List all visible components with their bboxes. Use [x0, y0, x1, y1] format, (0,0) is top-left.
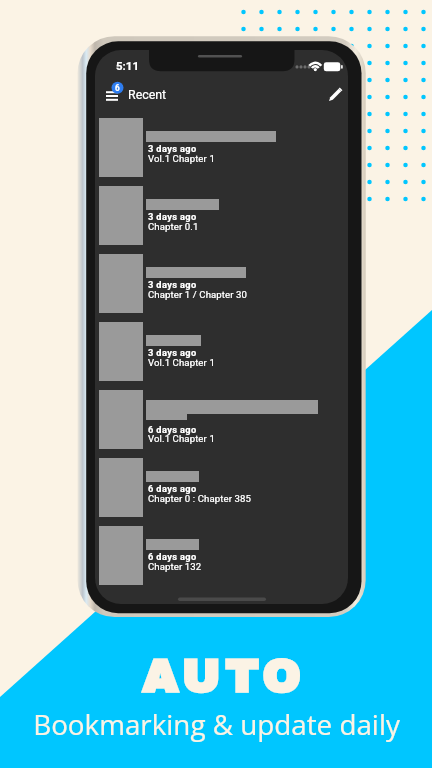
staticText: Vol.1 Chapter 1 — [148, 357, 215, 368]
button[interactable]: Menu — [103, 80, 129, 106]
button[interactable]: 6 days ago — [95, 390, 348, 453]
staticText: 5:11 — [116, 59, 140, 72]
staticText: Vol.1 Chapter 1 — [148, 433, 215, 444]
staticText: Vol.1 Chapter 1 — [148, 153, 215, 164]
staticText: 6 days ago — [148, 483, 197, 494]
staticText: Chapter 0.1 — [148, 221, 199, 232]
staticText: AUTO — [142, 652, 306, 701]
button[interactable]: 6 days ago — [95, 526, 348, 589]
button[interactable]: 6 days ago — [95, 458, 348, 521]
staticText: Bookmarking & update daily — [33, 705, 400, 743]
staticText: 3 days ago — [148, 279, 197, 290]
staticText: Chapter 1 / Chapter 30 — [148, 289, 248, 300]
staticText: 6 days ago — [148, 551, 197, 562]
staticText: Chapter 132 — [148, 561, 202, 572]
staticText: 3 days ago — [148, 347, 197, 358]
button[interactable]: Edit — [323, 81, 348, 107]
staticText: Recent — [128, 87, 167, 102]
staticText: 6 days ago — [148, 424, 197, 435]
button[interactable]: 3 days ago — [95, 254, 348, 317]
staticText: 3 days ago — [148, 211, 197, 222]
button[interactable]: 3 days ago — [95, 186, 348, 249]
staticText: 3 days ago — [148, 143, 197, 154]
staticText: Chapter 0 : Chapter 385 — [148, 493, 251, 504]
button[interactable]: 3 days ago — [95, 322, 348, 385]
staticText: 6 — [115, 83, 120, 93]
button[interactable]: 3 days ago — [95, 118, 348, 181]
